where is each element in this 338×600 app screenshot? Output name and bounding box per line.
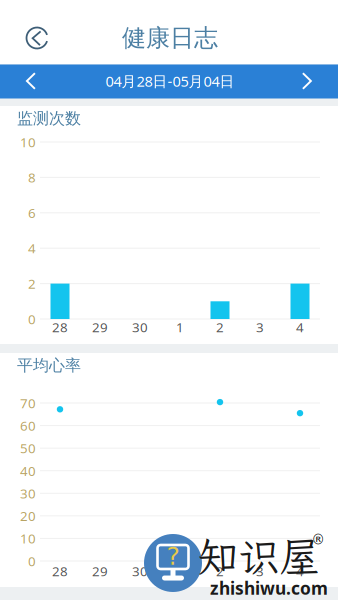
staticText: 3 bbox=[256, 562, 264, 580]
staticText: 3 bbox=[256, 318, 264, 336]
staticText: 1 bbox=[176, 318, 184, 336]
staticText: 30 bbox=[20, 484, 36, 502]
staticText: 8 bbox=[28, 168, 36, 186]
staticText: 40 bbox=[20, 462, 36, 480]
staticText: 6 bbox=[28, 204, 36, 222]
button[interactable]: Next week bbox=[287, 64, 327, 97]
staticText: 1 bbox=[176, 562, 184, 580]
staticText: 4 bbox=[296, 318, 304, 336]
staticText: 60 bbox=[20, 417, 36, 434]
staticText: 4 bbox=[296, 562, 304, 580]
staticText: 29 bbox=[92, 562, 108, 580]
staticText: zhishiwu.com bbox=[210, 576, 328, 599]
staticText: 健康日志 bbox=[122, 23, 218, 53]
staticText: ® bbox=[311, 532, 324, 548]
staticText: 监测次数 bbox=[17, 109, 81, 128]
staticText: 0 bbox=[28, 552, 36, 570]
staticText: 30 bbox=[132, 318, 148, 336]
staticText: 28 bbox=[52, 562, 68, 580]
staticText: 2 bbox=[216, 318, 224, 336]
button[interactable]: Previous week bbox=[11, 64, 51, 97]
staticText: 知识屋 bbox=[197, 529, 320, 583]
staticText: 平均心率 bbox=[17, 356, 81, 375]
staticText: 4 bbox=[28, 239, 36, 257]
staticText: 70 bbox=[20, 394, 36, 412]
staticText: 30 bbox=[132, 562, 148, 580]
button[interactable]: Back bbox=[15, 16, 59, 60]
staticText: 20 bbox=[20, 507, 36, 525]
staticText: 10 bbox=[20, 530, 36, 547]
staticText: 50 bbox=[20, 439, 36, 457]
staticText: 04月28日-05月04日 bbox=[105, 71, 234, 91]
staticText: 2 bbox=[28, 275, 36, 292]
staticText: 29 bbox=[92, 318, 108, 336]
staticText: ? bbox=[166, 541, 179, 571]
staticText: 10 bbox=[20, 133, 36, 151]
staticText: 0 bbox=[28, 310, 36, 328]
staticText: 2 bbox=[216, 562, 224, 580]
staticText: 28 bbox=[52, 318, 68, 336]
